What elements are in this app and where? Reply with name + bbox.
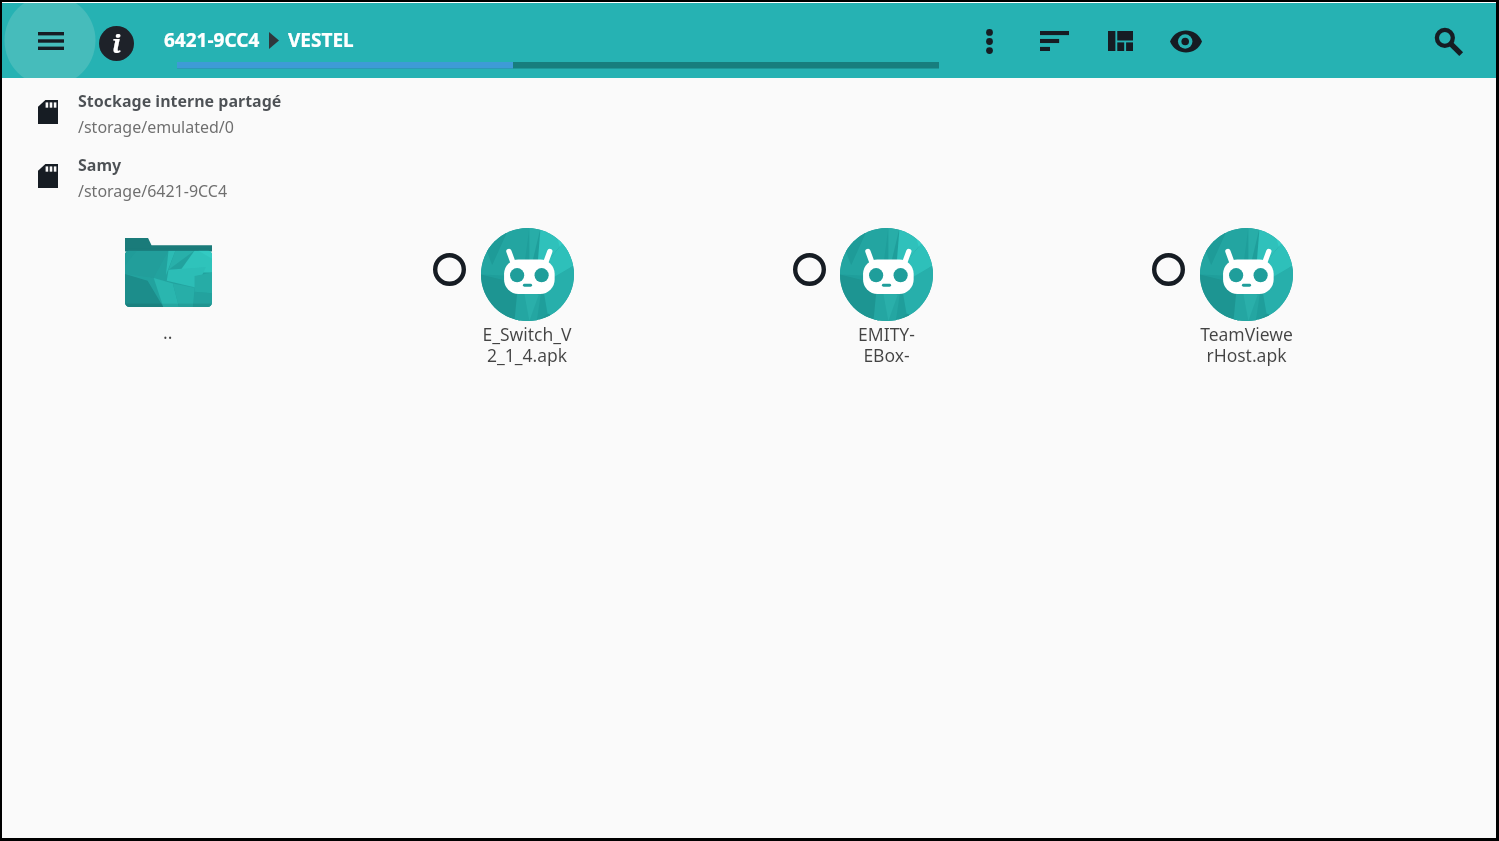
staticText: .. <box>163 320 173 344</box>
button[interactable]: Information <box>86 13 146 73</box>
button[interactable]: E_Switch_V 2_1_4.apk <box>457 228 597 367</box>
button[interactable]: Sort <box>1023 10 1085 72</box>
button[interactable]: TeamViewe rHost.apk <box>1176 228 1316 367</box>
button[interactable]: Change view <box>1089 10 1151 72</box>
button[interactable]: Samy <box>2 148 1496 204</box>
button[interactable]: Navigation menu <box>19 9 83 73</box>
button[interactable]: More options <box>958 10 1020 72</box>
staticText: Stockage interne partagé <box>78 90 282 112</box>
button[interactable]: .. <box>108 238 228 344</box>
button[interactable]: Select item <box>1145 246 1191 292</box>
staticText: /storage/emulated/0 <box>78 116 234 138</box>
staticText: /storage/6421-9CC4 <box>78 180 228 202</box>
staticText: VESTEL <box>288 27 354 53</box>
staticText: TeamViewe rHost.apk <box>1200 322 1293 367</box>
staticText: 6421-9CC4 <box>164 27 260 53</box>
button[interactable]: Select item <box>786 246 832 292</box>
button[interactable]: Select item <box>426 246 472 292</box>
staticText: Samy <box>78 154 122 176</box>
staticText: i <box>112 26 121 60</box>
button[interactable]: Show hidden files <box>1155 10 1217 72</box>
staticText: EMITY- EBox- <box>858 322 915 367</box>
button[interactable]: EMITY- EBox- <box>816 228 956 367</box>
staticText: E_Switch_V 2_1_4.apk <box>482 322 572 367</box>
button[interactable]: Search <box>1417 10 1479 72</box>
button[interactable]: Stockage interne partagé <box>2 84 1496 140</box>
